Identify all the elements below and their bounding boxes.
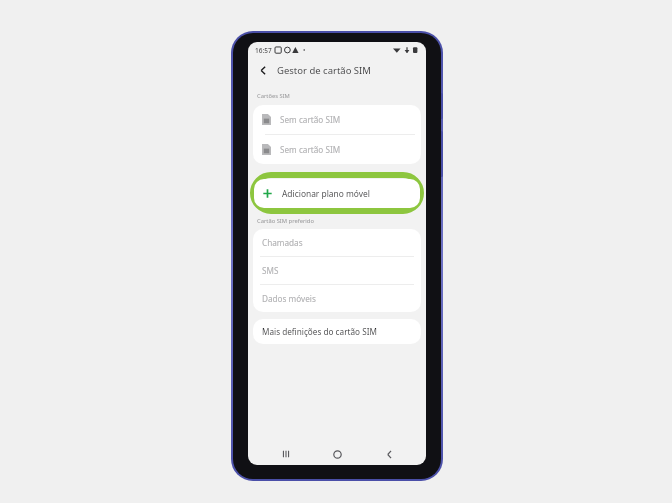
staticText: Chamadas: [262, 237, 303, 248]
button[interactable]: Back: [255, 62, 271, 78]
button[interactable]: Sem cartão SIM: [253, 105, 421, 134]
staticText: Sem cartão SIM: [280, 114, 341, 125]
button[interactable]: Back: [375, 444, 403, 464]
staticText: SMS: [262, 265, 279, 276]
staticText: Dados móveis: [262, 293, 316, 304]
staticText: Mais definições do cartão SIM: [262, 326, 377, 337]
button[interactable]: Dados móveis: [253, 285, 421, 312]
button[interactable]: Home: [323, 444, 351, 464]
button[interactable]: Sem cartão SIM: [253, 135, 421, 164]
button[interactable]: Mais definições do cartão SIM: [253, 319, 421, 344]
staticText: Adicionar plano móvel: [282, 188, 370, 199]
staticText: Gestor de cartão SIM: [277, 64, 371, 77]
staticText: Cartões SIM: [257, 92, 290, 100]
staticText: Cartão SIM preferido: [257, 217, 314, 225]
button[interactable]: Adicionar plano móvel: [254, 179, 420, 208]
button[interactable]: Chamadas: [253, 229, 421, 256]
button[interactable]: SMS: [253, 257, 421, 284]
staticText: 16:57: [255, 46, 272, 55]
staticText: Sem cartão SIM: [280, 144, 341, 155]
button[interactable]: Recent apps: [272, 444, 300, 464]
